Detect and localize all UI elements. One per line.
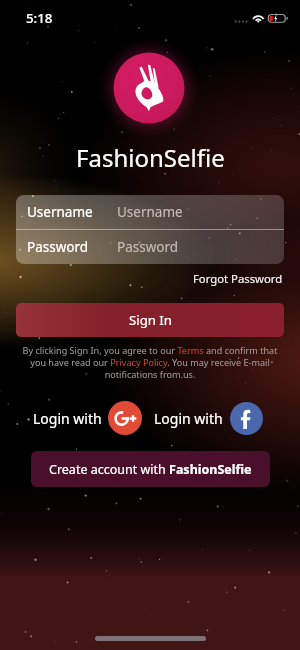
button[interactable]: Forgot Password [189, 267, 287, 290]
staticText: By clicking Sign In, you agree to our Te… [19, 344, 281, 380]
button[interactable]: Login with [154, 401, 263, 435]
button[interactable]: Password [16, 230, 284, 264]
button[interactable]: Login with [33, 401, 142, 435]
staticText: Password [117, 238, 179, 256]
staticText: Login with [33, 409, 102, 428]
other: Login with Facebook [230, 402, 263, 435]
staticText: Forgot Password [193, 271, 283, 286]
staticText: Login with [154, 409, 223, 428]
button[interactable]: Username [16, 195, 284, 229]
staticText: Create account with FashionSelfie [49, 461, 252, 478]
button[interactable]: Create account with FashionSelfie [31, 451, 270, 487]
staticText: Sign In [129, 311, 172, 329]
other: Login with Google Plus [108, 401, 142, 435]
staticText: FashionSelfie [76, 141, 225, 174]
staticText: Username [27, 203, 117, 221]
button[interactable]: Sign In [16, 303, 284, 337]
staticText: 5:18 [26, 9, 53, 27]
staticText: Password [27, 238, 117, 256]
staticText: Username [117, 203, 183, 221]
